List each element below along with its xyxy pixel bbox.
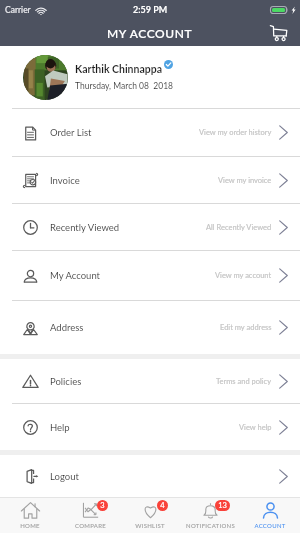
- staticText: Thursday, March 08 2018: [75, 81, 174, 91]
- staticText: View my order history: [199, 128, 272, 137]
- staticText: Edit my address: [220, 323, 272, 332]
- staticText: 4: [160, 501, 165, 510]
- staticText: View my invoice: [218, 176, 272, 185]
- button[interactable]: HOME: [0, 498, 60, 533]
- staticText: Recently Viewed: [50, 222, 120, 233]
- button[interactable]: ACCOUNT: [240, 498, 300, 533]
- button[interactable]: Logout: [0, 455, 300, 497]
- staticText: Help: [50, 422, 70, 433]
- button[interactable]: 4: [120, 498, 180, 533]
- staticText: Policies: [50, 376, 82, 387]
- staticText: My Account: [50, 270, 101, 281]
- button[interactable]: Recently Viewed: [0, 204, 300, 250]
- staticText: Carrier: [5, 5, 31, 15]
- staticText: View help: [239, 423, 272, 432]
- staticText: Address: [50, 322, 84, 333]
- staticText: Terms and policy: [216, 377, 272, 386]
- button[interactable]: 13: [180, 498, 240, 533]
- staticText: 3: [100, 501, 105, 510]
- staticText: Logout: [50, 471, 79, 482]
- staticText: View my account: [215, 271, 272, 280]
- staticText: Karthik Chinnappa: [75, 63, 163, 76]
- button[interactable]: Shopping cart: [268, 21, 288, 45]
- staticText: HOME: [20, 522, 40, 529]
- button[interactable]: Help: [0, 404, 300, 450]
- staticText: MY ACCOUNT: [107, 26, 193, 40]
- staticText: WISHLIST: [135, 522, 165, 529]
- button[interactable]: Karthik Chinnappa: [0, 46, 300, 108]
- staticText: 2:59 PM: [133, 4, 168, 15]
- staticText: COMPARE: [75, 522, 106, 529]
- button[interactable]: Invoice: [0, 157, 300, 203]
- staticText: Order List: [50, 127, 92, 138]
- staticText: Invoice: [50, 175, 80, 186]
- button[interactable]: Policies: [0, 359, 300, 403]
- staticText: NOTIFICATIONS: [186, 522, 235, 529]
- staticText: ACCOUNT: [254, 522, 286, 529]
- button[interactable]: Order List: [0, 109, 300, 156]
- button[interactable]: 3: [60, 498, 120, 533]
- button[interactable]: Address: [0, 301, 300, 354]
- staticText: 13: [218, 501, 227, 510]
- staticText: All Recently Viewed: [206, 223, 272, 232]
- button[interactable]: My Account: [0, 251, 300, 300]
